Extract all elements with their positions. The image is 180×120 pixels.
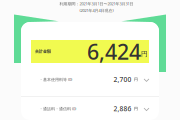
- staticText: (2021年4月4日現在): [79, 8, 113, 13]
- staticText: 円: [141, 50, 148, 58]
- staticText: 利用期間：2021年3月1日〜2021年3月31日: [59, 1, 133, 6]
- staticText: 2,700: [113, 75, 131, 84]
- staticText: 6,424: [87, 37, 141, 66]
- staticText: 円: [134, 77, 138, 82]
- button[interactable]: ・基本使用料等 (0): [21, 63, 159, 96]
- staticText: 円: [134, 106, 138, 111]
- staticText: ・通話料・通信料 (0): [39, 106, 76, 111]
- button[interactable]: ・通話料・通信料 (0): [21, 97, 159, 120]
- staticText: ・基本使用料等 (0): [39, 77, 72, 82]
- staticText: 合計金額: [35, 49, 51, 54]
- staticText: 2,886: [113, 104, 131, 113]
